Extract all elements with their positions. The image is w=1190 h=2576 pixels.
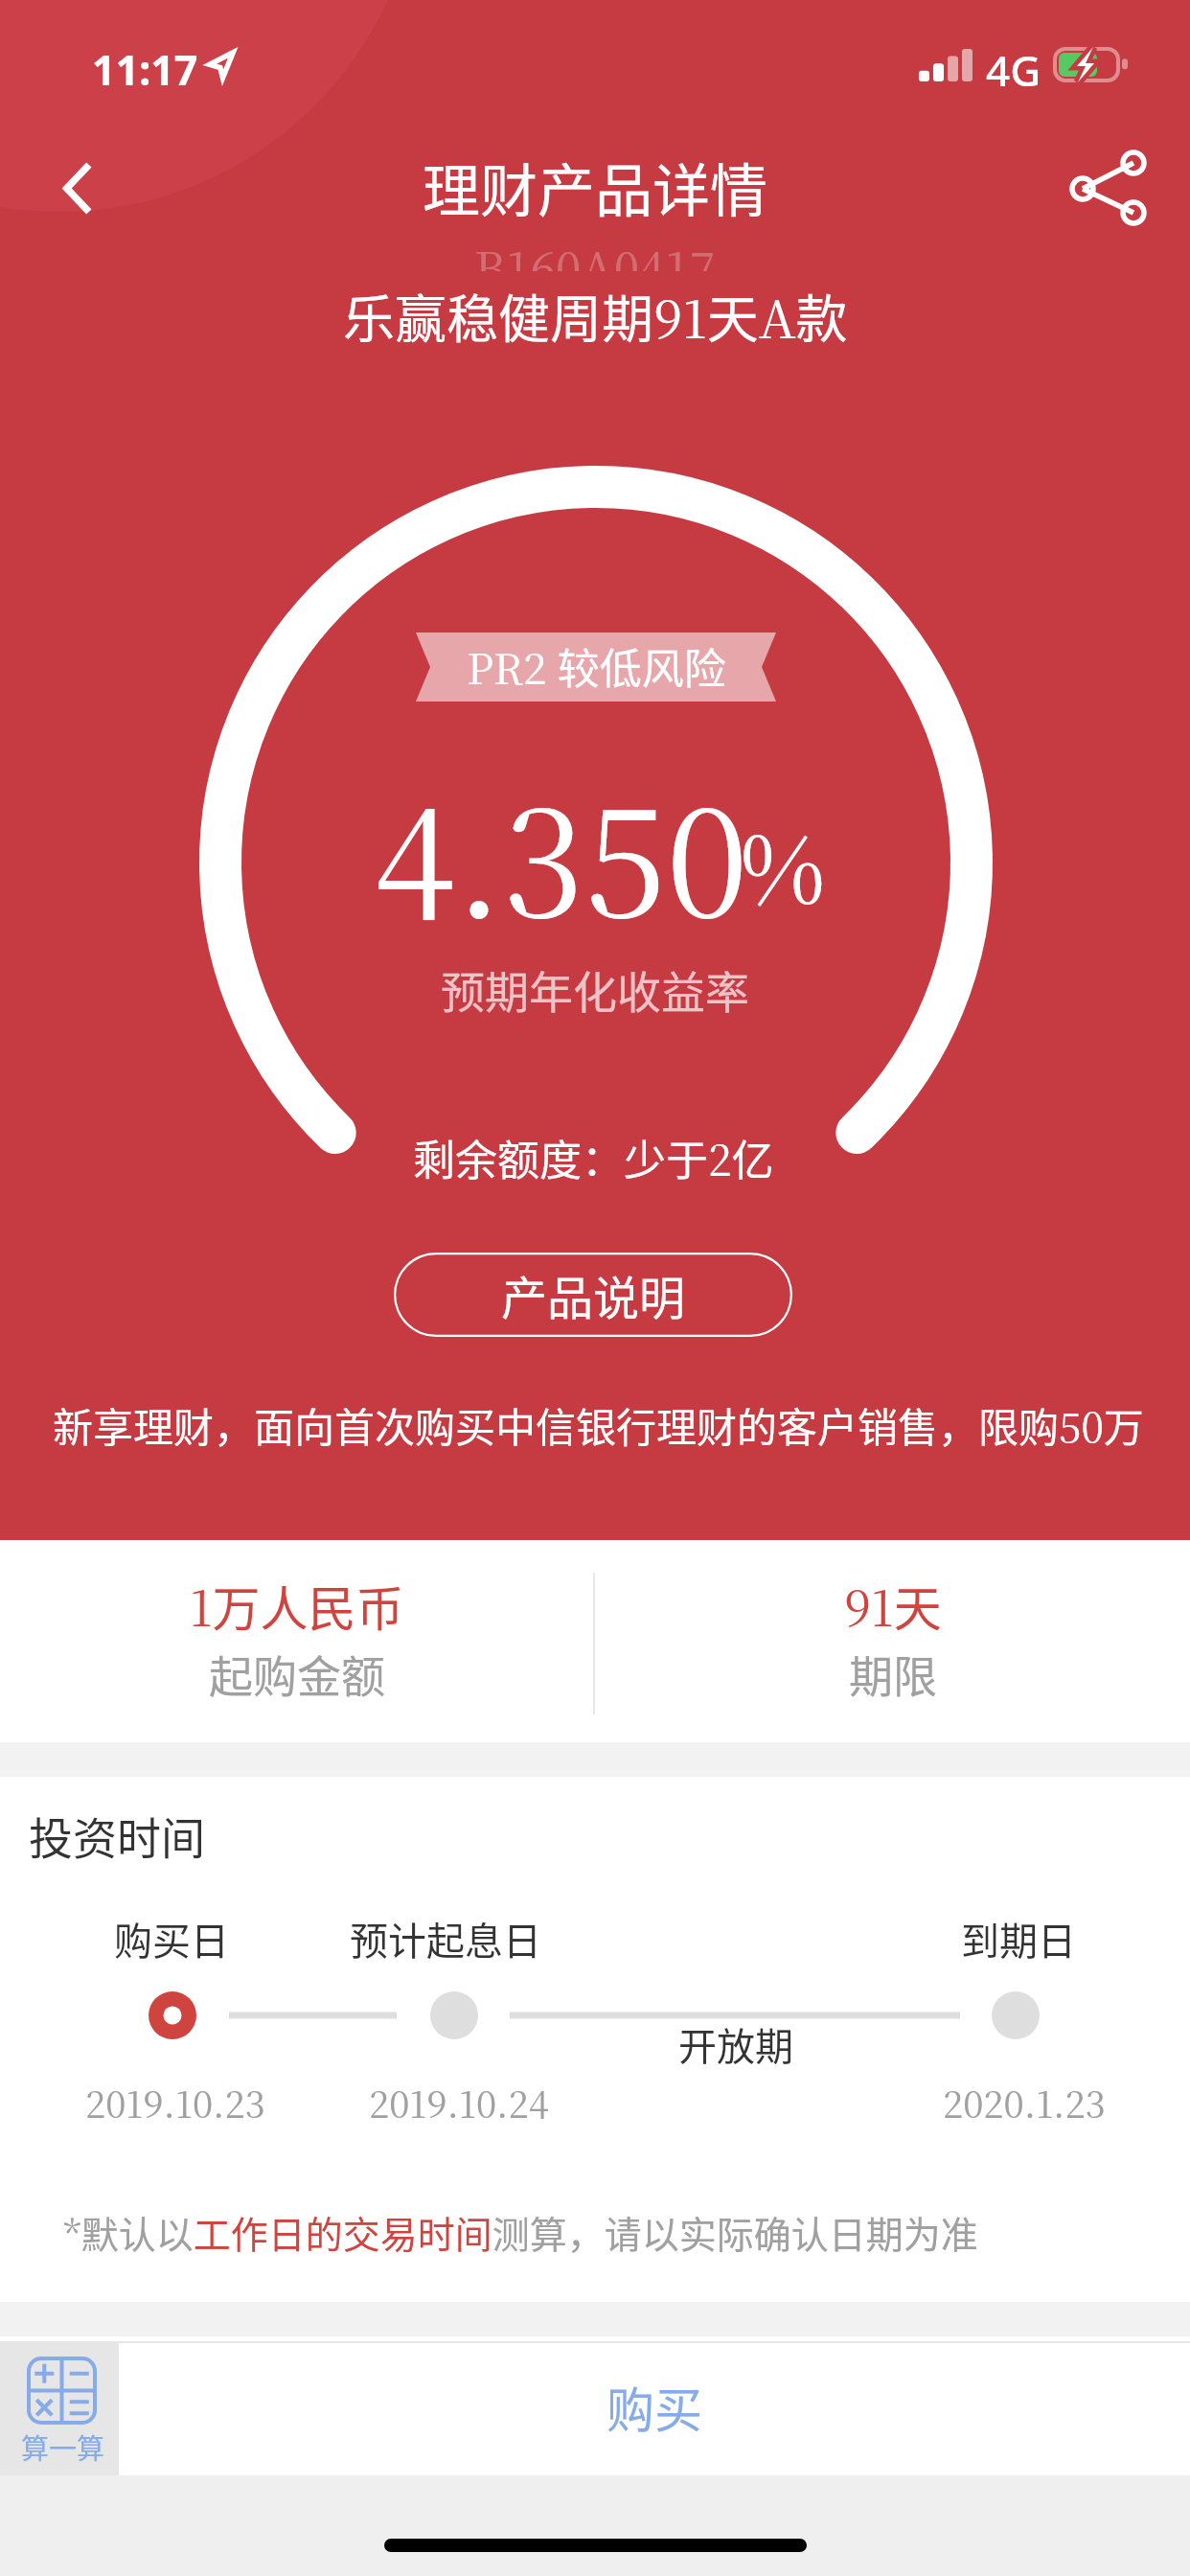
staticText: 期限: [849, 1642, 937, 1706]
button[interactable]: Back: [29, 140, 125, 236]
staticText: 购买: [606, 2372, 702, 2441]
staticText: 2019.10.24: [369, 2076, 549, 2128]
staticText: 算一算: [21, 2426, 105, 2467]
staticText: 1万人民币: [190, 1571, 404, 1640]
staticText: 2019.10.23: [85, 2076, 265, 2128]
staticText: 开放期: [678, 2016, 793, 2072]
staticText: 预计起息日: [350, 1911, 541, 1966]
staticText: %: [740, 796, 826, 930]
button[interactable]: 产品说明: [394, 1253, 792, 1337]
staticText: 产品说明: [501, 1261, 686, 1328]
staticText: 91天: [844, 1571, 942, 1640]
button[interactable]: Share: [1055, 135, 1160, 241]
staticText: 新享理财，面向首次购买中信银行理财的客户销售，限购50万: [53, 1395, 1144, 1454]
staticText: 购买日: [114, 1911, 229, 1966]
staticText: 投资时间: [29, 1804, 205, 1868]
staticText: 剩余额度：少于2亿: [413, 1127, 774, 1188]
staticText: 4.350: [374, 748, 748, 959]
staticText: 2020.1.23: [943, 2076, 1106, 2128]
button[interactable]: 算一算 Calculator: [0, 2343, 119, 2476]
staticText: 11:17: [92, 41, 198, 98]
staticText: B160A0417: [474, 247, 716, 271]
staticText: 乐赢稳健周期91天A款: [343, 278, 848, 353]
staticText: 到期日: [961, 1911, 1076, 1966]
staticText: PR2 较低风险: [467, 635, 726, 697]
staticText: 理财产品详情: [423, 145, 767, 228]
button[interactable]: 购买: [119, 2343, 1190, 2477]
staticText: 4G: [986, 41, 1041, 99]
staticText: *默认以工作日的交易时间测算，请以实际确认日期为准: [63, 2205, 978, 2259]
staticText: 预期年化收益率: [441, 957, 749, 1022]
staticText: 起购金额: [209, 1642, 385, 1706]
